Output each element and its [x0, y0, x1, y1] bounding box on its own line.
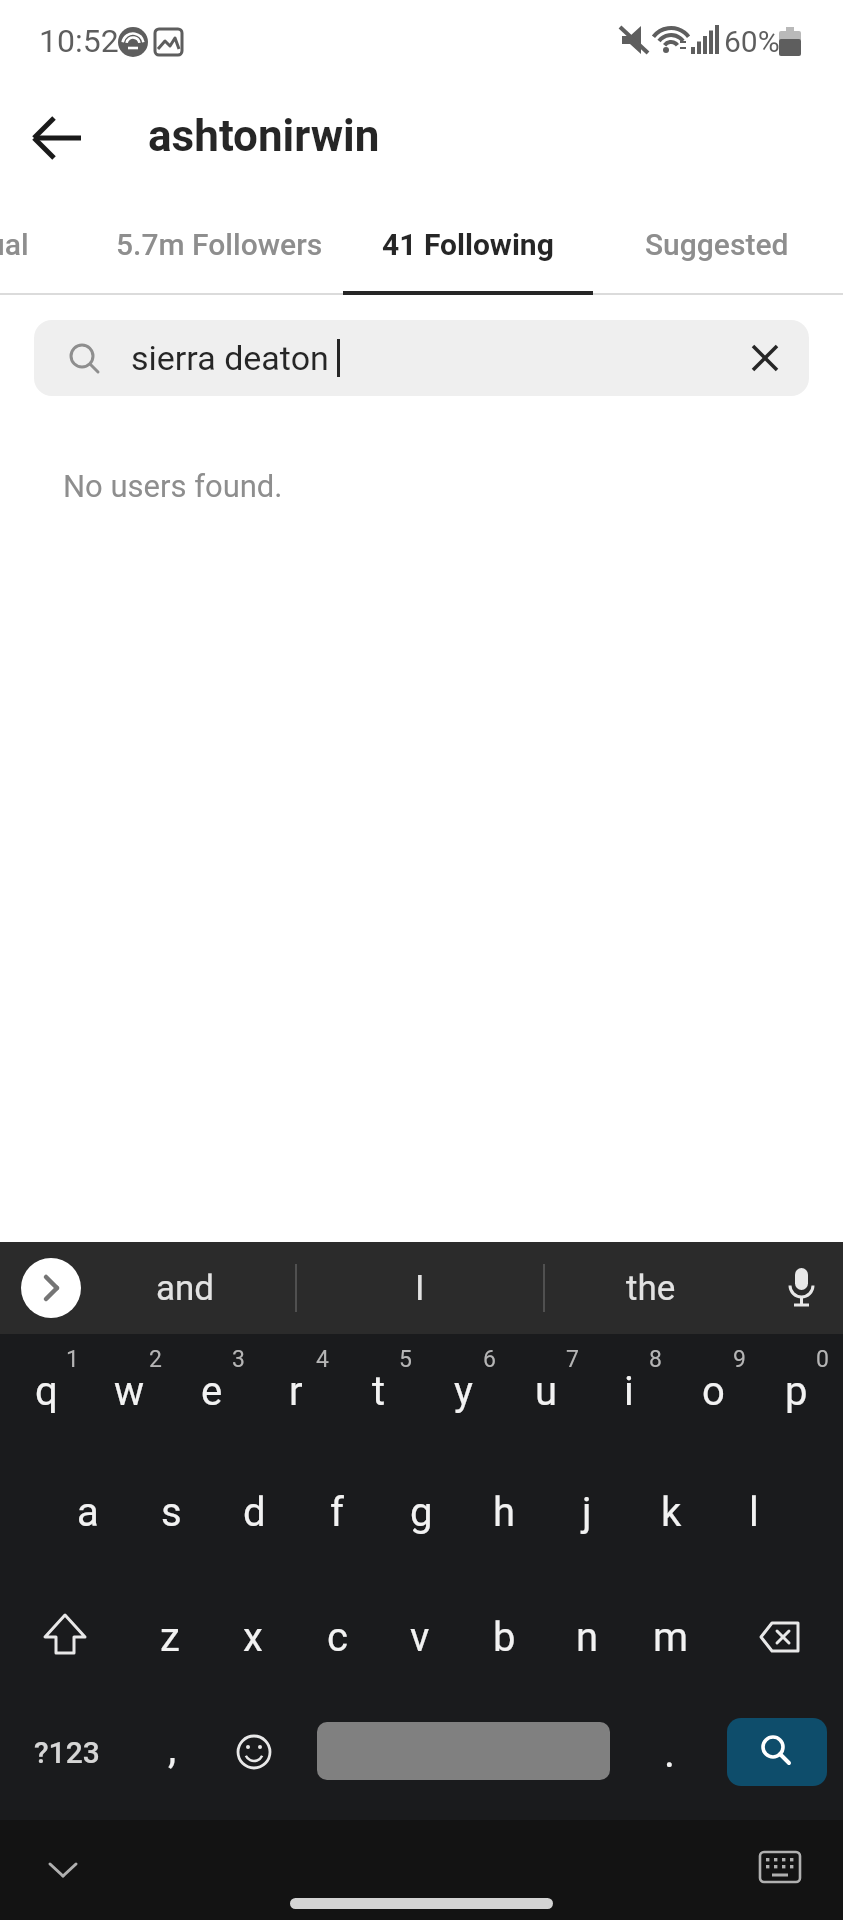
staticText: 3 — [232, 1346, 245, 1373]
button[interactable]: j — [547, 1467, 627, 1557]
staticText: x — [243, 1614, 263, 1661]
staticText: i — [624, 1368, 634, 1415]
staticText: o — [702, 1368, 725, 1415]
button[interactable]: 5.7m Followers — [69, 209, 369, 279]
button[interactable] — [214, 1712, 294, 1792]
button[interactable]: n — [547, 1592, 627, 1682]
button[interactable]: z — [130, 1592, 210, 1682]
staticText: and — [156, 1268, 215, 1309]
button[interactable]: o — [673, 1346, 753, 1436]
button[interactable] — [21, 1258, 81, 1318]
staticText: sierra deaton — [131, 338, 329, 378]
staticText: c — [327, 1614, 348, 1661]
button[interactable]: r — [256, 1346, 336, 1436]
staticText: 0 — [816, 1346, 829, 1373]
button[interactable]: ?123 — [7, 1707, 127, 1797]
staticText: 5.7m Followers — [116, 227, 323, 262]
staticText: b — [493, 1614, 516, 1661]
staticText: , — [168, 1724, 177, 1773]
button[interactable]: g — [381, 1467, 461, 1557]
staticText: v — [410, 1614, 430, 1661]
staticText: No users found. — [63, 468, 283, 504]
staticText: l — [749, 1489, 759, 1536]
button[interactable]: x — [213, 1592, 293, 1682]
button[interactable] — [750, 1838, 810, 1898]
button[interactable]: h — [464, 1467, 544, 1557]
staticText: f — [330, 1489, 344, 1536]
staticText: w — [114, 1368, 145, 1415]
staticText: t — [372, 1368, 386, 1415]
staticText: I — [415, 1268, 425, 1309]
staticText: Suggested — [645, 227, 789, 262]
button[interactable]: m — [631, 1592, 711, 1682]
staticText: 6 — [483, 1346, 496, 1373]
button[interactable]: Suggested — [567, 209, 843, 279]
staticText: u — [535, 1368, 558, 1415]
button[interactable]: w — [89, 1346, 169, 1436]
staticText: r — [289, 1368, 303, 1415]
button[interactable] — [33, 1840, 93, 1900]
staticText: 2 — [149, 1346, 162, 1373]
button[interactable]: q — [6, 1346, 86, 1436]
staticText: 8 — [649, 1346, 662, 1373]
button[interactable]: f — [297, 1467, 377, 1557]
staticText: h — [493, 1489, 516, 1536]
button[interactable]: and — [90, 1242, 280, 1334]
button[interactable]: b — [464, 1592, 544, 1682]
staticText: q — [35, 1368, 58, 1415]
button[interactable] — [25, 1597, 105, 1677]
button[interactable]: u — [506, 1346, 586, 1436]
staticText: 10:52 — [39, 22, 119, 60]
staticText: 4 — [316, 1346, 329, 1373]
button[interactable] — [20, 102, 92, 174]
staticText: 7 — [566, 1346, 579, 1373]
staticText: 9 — [733, 1346, 746, 1373]
button[interactable]: y — [423, 1346, 503, 1436]
button[interactable]: t — [339, 1346, 419, 1436]
button[interactable]: i — [589, 1346, 669, 1436]
staticText: the — [626, 1268, 676, 1309]
staticText: g — [410, 1489, 433, 1536]
staticText: p — [785, 1368, 808, 1415]
button[interactable]: s — [131, 1467, 211, 1557]
button[interactable]: the — [556, 1242, 746, 1334]
staticText: 60% — [724, 24, 780, 59]
staticText: e — [201, 1368, 223, 1415]
button[interactable]: , — [132, 1703, 212, 1793]
button[interactable]: 41 Following — [318, 209, 618, 279]
button[interactable]: I — [325, 1242, 515, 1334]
button[interactable]: a — [48, 1467, 128, 1557]
staticText: j — [582, 1489, 592, 1536]
button[interactable]: p — [756, 1346, 836, 1436]
button[interactable]: l — [714, 1467, 794, 1557]
button[interactable]: . — [630, 1707, 710, 1797]
button[interactable]: d — [214, 1467, 294, 1557]
staticText: ual — [0, 227, 29, 262]
button[interactable] — [736, 1597, 816, 1677]
staticText: 5 — [399, 1346, 412, 1373]
staticText: y — [454, 1368, 473, 1415]
button[interactable]: v — [380, 1592, 460, 1682]
staticText: 41 Following — [382, 227, 554, 262]
staticText: 1 — [66, 1346, 79, 1373]
button[interactable]: c — [297, 1592, 377, 1682]
staticText: . — [664, 1728, 676, 1777]
button[interactable]: sierra deaton — [34, 320, 809, 396]
button[interactable] — [727, 1718, 827, 1786]
staticText: ?123 — [34, 1735, 100, 1770]
staticText: ashtonirwin — [148, 110, 380, 162]
button[interactable]: ual — [0, 209, 53, 279]
staticText: s — [161, 1489, 182, 1536]
staticText: m — [653, 1614, 689, 1661]
staticText: z — [160, 1614, 180, 1661]
button[interactable] — [780, 1266, 824, 1310]
button[interactable] — [317, 1722, 610, 1780]
button[interactable]: e — [172, 1346, 252, 1436]
button[interactable]: k — [631, 1467, 711, 1557]
staticText: k — [661, 1489, 682, 1536]
staticText: d — [243, 1489, 266, 1536]
staticText: a — [77, 1489, 99, 1536]
staticText: n — [576, 1614, 599, 1661]
